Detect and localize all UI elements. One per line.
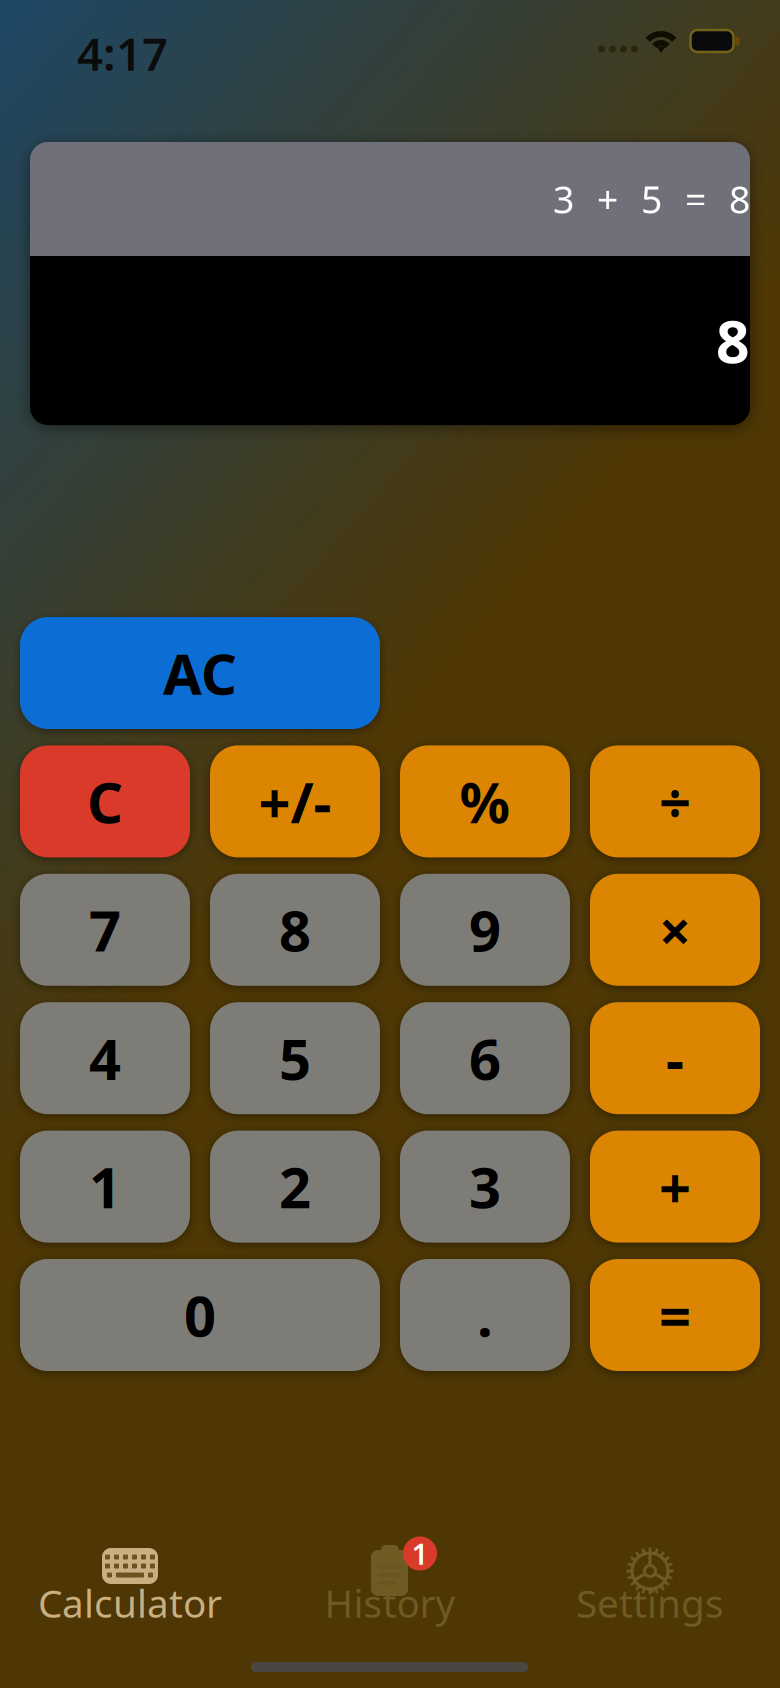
button[interactable]: Settings xyxy=(520,1544,780,1640)
button[interactable]: 0 xyxy=(20,1259,380,1371)
staticText: 5 xyxy=(279,1021,311,1095)
staticText: ÷ xyxy=(659,764,691,839)
staticText: × xyxy=(659,893,691,967)
staticText: % xyxy=(459,764,510,839)
staticText: - xyxy=(666,1021,684,1095)
staticText: 3 xyxy=(553,174,574,224)
button[interactable]: . xyxy=(400,1259,570,1371)
staticText: 9 xyxy=(469,893,501,967)
button[interactable]: 7 xyxy=(20,874,190,986)
button[interactable]: 2 xyxy=(210,1131,380,1243)
staticText: C xyxy=(87,764,123,839)
staticText: +/- xyxy=(258,764,331,839)
button[interactable]: +/- xyxy=(210,745,380,857)
button[interactable]: AC xyxy=(20,617,380,729)
button[interactable]: × xyxy=(590,874,760,986)
button[interactable]: % xyxy=(400,745,570,857)
staticText: 4:17 xyxy=(77,23,168,83)
button[interactable]: 1 xyxy=(260,1544,520,1640)
button[interactable]: 4 xyxy=(20,1002,190,1114)
button[interactable]: 3 xyxy=(400,1131,570,1243)
staticText: 2 xyxy=(279,1149,311,1224)
staticText: Settings xyxy=(576,1577,724,1628)
staticText: 1 xyxy=(89,1149,121,1224)
staticText: 5 xyxy=(641,174,662,224)
button[interactable]: - xyxy=(590,1002,760,1114)
staticText: 8 xyxy=(729,174,750,224)
staticText: Calculator xyxy=(38,1577,222,1628)
staticText: 7 xyxy=(89,893,121,967)
staticText: + xyxy=(659,1149,691,1224)
staticText: 0 xyxy=(184,1278,216,1352)
staticText: . xyxy=(477,1278,493,1352)
button[interactable]: 5 xyxy=(210,1002,380,1114)
staticText: History xyxy=(324,1577,455,1628)
staticText: 6 xyxy=(469,1021,501,1095)
staticText: AC xyxy=(163,636,237,710)
button[interactable]: ÷ xyxy=(590,745,760,857)
button[interactable]: 6 xyxy=(400,1002,570,1114)
button[interactable]: 1 xyxy=(20,1131,190,1243)
button[interactable]: 9 xyxy=(400,874,570,986)
button[interactable]: 8 xyxy=(210,874,380,986)
staticText: 8 xyxy=(279,893,311,967)
staticText: = xyxy=(685,174,706,224)
button[interactable]: Calculator xyxy=(0,1544,260,1640)
staticText: + xyxy=(597,174,618,224)
staticText: = xyxy=(659,1278,691,1352)
staticText: 1 xyxy=(411,1534,428,1573)
button[interactable]: + xyxy=(590,1131,760,1243)
staticText: 3 xyxy=(469,1149,501,1224)
button[interactable]: = xyxy=(590,1259,760,1371)
staticText: 8 xyxy=(716,301,750,379)
staticText: 4 xyxy=(89,1021,121,1095)
button[interactable]: C xyxy=(20,745,190,857)
